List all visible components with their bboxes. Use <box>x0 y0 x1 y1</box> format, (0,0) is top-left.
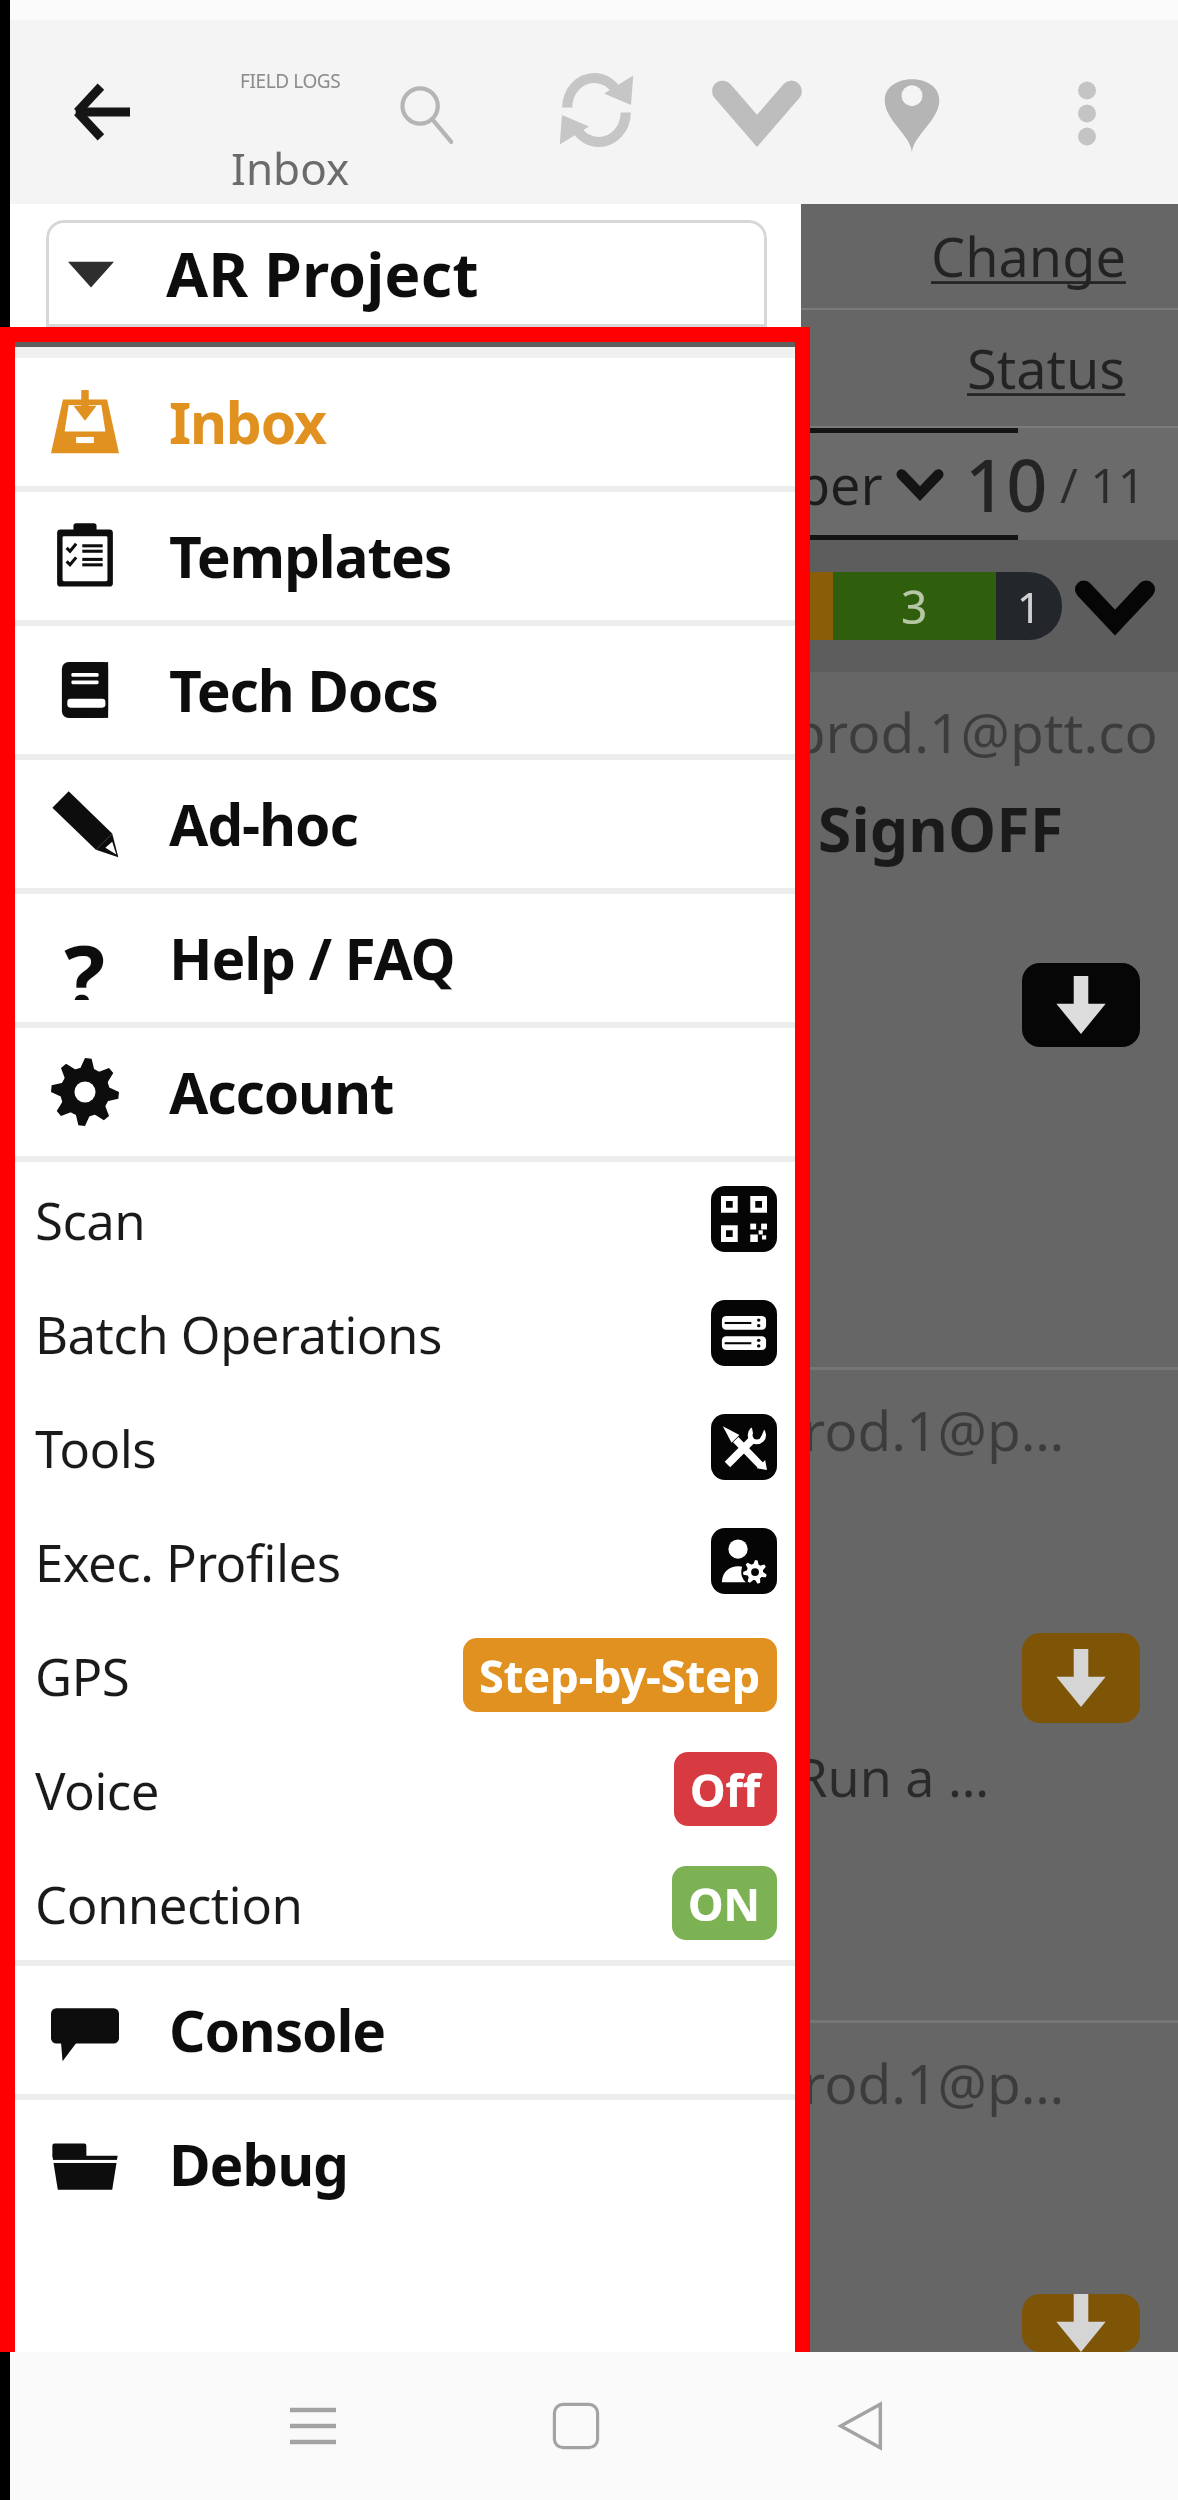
staticText: Connection <box>35 1869 303 1938</box>
button[interactable]: Location <box>842 0 1002 204</box>
staticText: Status <box>967 331 1126 405</box>
staticText: Step-by-Step <box>479 1645 761 1706</box>
staticText: Tech Docs <box>169 651 438 729</box>
staticText: Inbox <box>169 383 326 461</box>
staticText: AR Project <box>166 232 479 315</box>
staticText: dr.root.preprod.1@p… <box>497 2045 1065 2120</box>
staticText: Exec. Profiles <box>35 1527 341 1596</box>
button[interactable]: Download <box>1022 963 1140 1047</box>
button[interactable]: ? <box>15 894 795 1022</box>
staticText: Console <box>169 1991 386 2069</box>
staticText: FIELD LOGS <box>240 68 341 94</box>
button[interactable]: Scan <box>15 1162 795 1276</box>
staticText: Ad-hoc <box>169 785 358 863</box>
staticText: New SignOFF <box>665 787 1064 870</box>
staticText: dr.root.preprod.1@ptt.com <box>520 694 1178 769</box>
staticText: Help / FAQ <box>169 919 455 997</box>
button[interactable]: Back <box>718 2352 1003 2500</box>
button[interactable]: Recents <box>193 2352 433 2500</box>
button[interactable]: Collapse <box>677 0 842 204</box>
button[interactable]: Tech Docs <box>15 626 795 754</box>
button[interactable]: Batch Operations <box>15 1276 795 1390</box>
staticText: Voice <box>35 1755 159 1824</box>
button[interactable]: Home <box>433 2352 718 2500</box>
staticText: 10 <box>965 435 1048 533</box>
staticText: Change <box>931 219 1126 293</box>
button[interactable]: GPS <box>15 1618 795 1732</box>
button[interactable]: Templates <box>15 492 795 620</box>
button[interactable]: Download <box>1022 1633 1140 1723</box>
staticText: Tools <box>35 1413 157 1482</box>
staticText: ? <box>64 916 106 1000</box>
button[interactable]: Inbox <box>15 358 795 486</box>
staticText: Scan <box>35 1185 146 1254</box>
button[interactable]: Back <box>10 0 190 204</box>
button[interactable]: Tools <box>15 1390 795 1504</box>
button[interactable]: Console <box>15 1966 795 2094</box>
staticText: Debug <box>169 2125 348 2203</box>
button[interactable]: Account <box>15 1028 795 1156</box>
button[interactable]: Ad-hoc <box>15 760 795 888</box>
button[interactable]: AR Project <box>46 220 767 327</box>
staticText: Templates <box>169 517 452 595</box>
staticText: 1 <box>1017 578 1042 635</box>
staticText: Off <box>690 1759 761 1820</box>
staticText: Batch Operations <box>35 1299 442 1368</box>
button[interactable]: More options <box>1002 0 1178 204</box>
staticText: Inbox <box>231 138 350 198</box>
button[interactable]: Connection <box>15 1846 795 1960</box>
staticText: dr.root.preprod.1@p… <box>497 1392 1065 1467</box>
staticText: Number <box>672 447 883 521</box>
button[interactable]: Search <box>390 0 510 204</box>
button[interactable]: Debug <box>15 2100 795 2228</box>
staticText: ON <box>688 1873 761 1934</box>
button[interactable]: Voice <box>15 1732 795 1846</box>
staticText: 1. Check | 2. Run a … <box>478 1741 990 1812</box>
staticText: GPS <box>35 1641 130 1710</box>
button[interactable]: Refresh <box>510 0 677 204</box>
button[interactable]: Exec. Profiles <box>15 1504 795 1618</box>
staticText: / 11 <box>1060 452 1146 517</box>
staticText: 3 <box>901 575 928 638</box>
staticText: Account <box>169 1053 394 1131</box>
button[interactable]: Download <box>1022 2294 1140 2352</box>
